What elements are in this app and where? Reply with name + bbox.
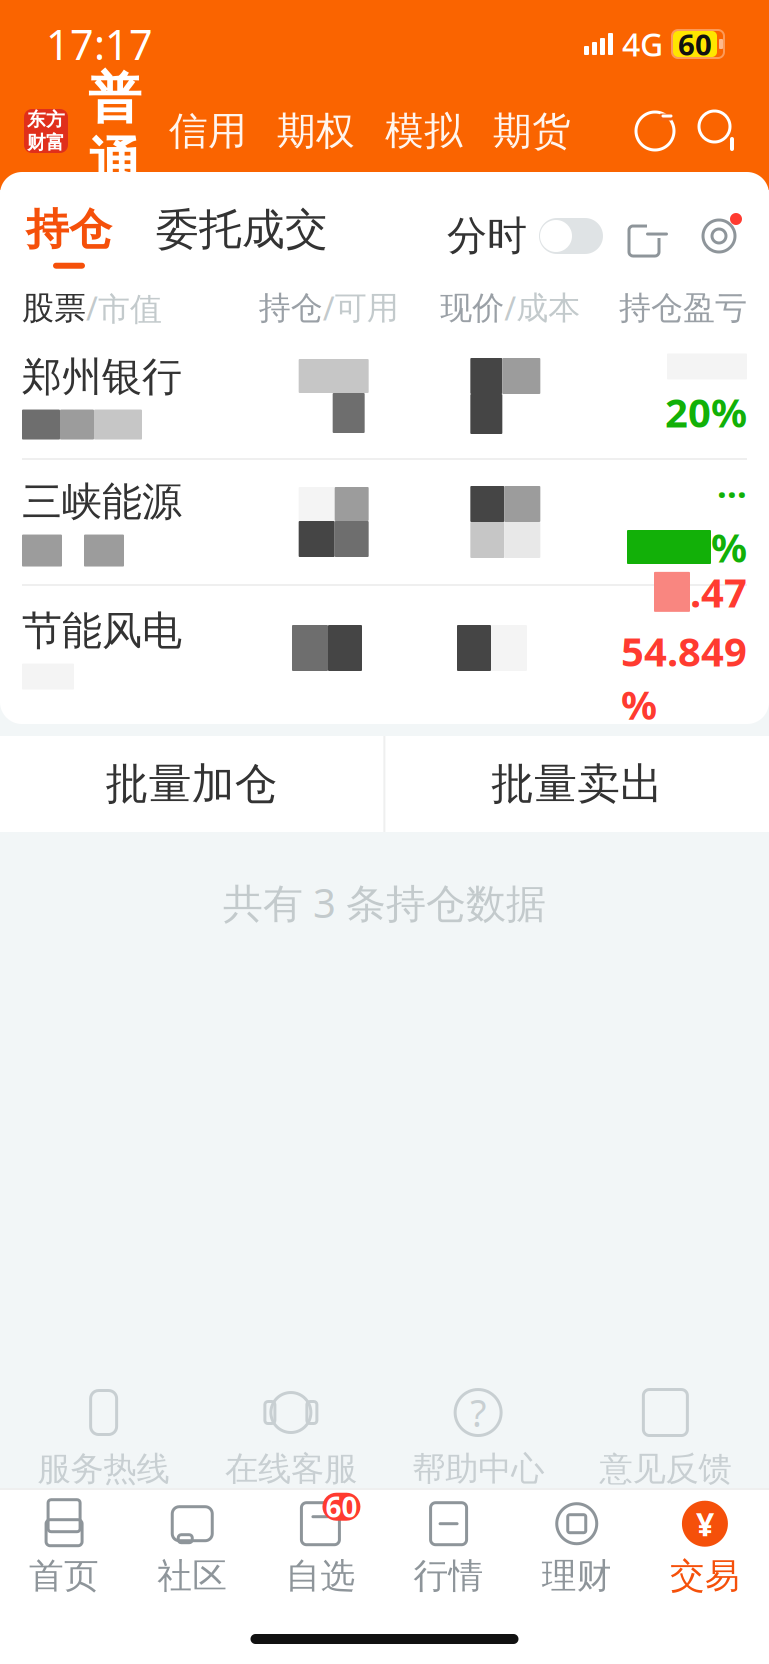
- staticText: /: [504, 287, 516, 329]
- button[interactable]: 东方财富: [24, 109, 68, 153]
- staticText: 理财: [542, 1555, 612, 1597]
- button[interactable]: 分享: [621, 208, 677, 264]
- staticText: 模拟: [385, 107, 463, 155]
- button[interactable]: 委托成交: [152, 203, 332, 269]
- staticText: 分时: [447, 211, 527, 260]
- staticText: 意见反馈: [599, 1448, 731, 1489]
- button[interactable]: 60: [256, 1499, 384, 1597]
- button[interactable]: 在线客服: [197, 1386, 384, 1489]
- staticText: 成本: [516, 288, 580, 328]
- staticText: 在线客服: [225, 1448, 357, 1489]
- button[interactable]: 郑州银行: [0, 334, 769, 458]
- button[interactable]: 社区: [128, 1499, 256, 1597]
- staticText: 批量加仓: [106, 758, 278, 810]
- staticText: 持仓: [259, 288, 323, 328]
- button[interactable]: 理财: [513, 1499, 641, 1597]
- staticText: 信用: [169, 107, 247, 155]
- staticText: 17:17: [46, 17, 153, 71]
- button[interactable]: 刷新: [629, 105, 681, 157]
- staticText: 服务热线: [38, 1448, 170, 1489]
- staticText: ?: [470, 1388, 486, 1437]
- button[interactable]: ¥: [641, 1499, 769, 1597]
- button[interactable]: 批量卖出: [385, 736, 769, 832]
- staticText: %: [711, 520, 747, 574]
- button[interactable]: 节能风电: [0, 586, 769, 710]
- button[interactable]: 信用: [165, 101, 251, 161]
- staticText: 60: [325, 1488, 357, 1525]
- staticText: /市值: [86, 287, 162, 329]
- staticText: 节能风电: [22, 606, 182, 655]
- button[interactable]: 期权: [273, 101, 359, 161]
- staticText: .47: [690, 565, 747, 618]
- staticText: ¥: [696, 1502, 714, 1545]
- button[interactable]: 首页: [0, 1499, 128, 1597]
- staticText: 持仓盈亏: [619, 288, 747, 328]
- staticText: 20%: [665, 385, 747, 438]
- button[interactable]: 意见反馈: [572, 1386, 759, 1489]
- button[interactable]: 行情: [384, 1499, 513, 1597]
- staticText: 东方: [27, 108, 65, 131]
- button[interactable]: 设置: [691, 208, 747, 264]
- button[interactable]: 搜索: [693, 105, 745, 157]
- button[interactable]: 持仓: [22, 203, 116, 269]
- staticText: 三峡能源: [22, 477, 182, 526]
- staticText: 行情: [414, 1555, 484, 1597]
- button[interactable]: 分时: [447, 205, 603, 266]
- staticText: 可用: [335, 288, 399, 328]
- staticText: 60: [678, 24, 712, 63]
- staticText: 帮助中心: [412, 1448, 544, 1489]
- staticText: 共有 3 条持仓数据: [223, 876, 546, 929]
- staticText: 期权: [277, 107, 355, 155]
- staticText: 交易: [670, 1555, 740, 1597]
- staticText: 郑州银行: [22, 352, 182, 401]
- button[interactable]: 批量加仓: [0, 736, 383, 832]
- staticText: 期货: [493, 107, 571, 155]
- staticText: 财富: [27, 131, 65, 154]
- button[interactable]: 三峡能源: [0, 460, 769, 584]
- staticText: 批量卖出: [491, 758, 663, 810]
- staticText: 现价: [440, 288, 504, 328]
- button[interactable]: 期货: [489, 101, 575, 161]
- button[interactable]: 95357: [10, 1386, 197, 1489]
- staticText: 自选: [285, 1555, 355, 1597]
- button[interactable]: 普通: [82, 65, 147, 196]
- staticText: ···: [717, 470, 747, 516]
- staticText: /: [323, 287, 335, 329]
- staticText: 普通: [88, 65, 141, 196]
- staticText: 首页: [29, 1555, 99, 1597]
- staticText: 社区: [157, 1555, 227, 1597]
- staticText: 委托成交: [156, 203, 328, 256]
- staticText: 4G: [622, 23, 663, 65]
- button[interactable]: 模拟: [381, 101, 467, 161]
- staticText: 持仓: [26, 203, 112, 256]
- staticText: 股票: [22, 288, 86, 328]
- button[interactable]: ?: [384, 1386, 572, 1489]
- staticText: 54.849%: [621, 624, 747, 731]
